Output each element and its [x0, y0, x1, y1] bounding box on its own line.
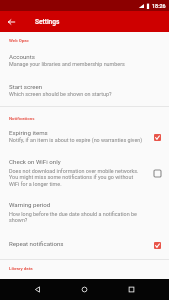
staticText: Which screen should be shown on startup?	[9, 91, 161, 97]
staticText: Notify, if an item is about to expire (n…	[9, 137, 161, 143]
button[interactable]: Start screen	[0, 79, 169, 101]
staticText: 18:26	[152, 3, 166, 9]
button[interactable]: Toggle setting	[152, 240, 162, 250]
button[interactable]: Back	[27, 279, 48, 300]
button[interactable]: Recent apps	[121, 279, 142, 300]
button[interactable]: Navigate up	[1, 11, 22, 32]
button[interactable]: Warning period	[0, 197, 169, 225]
staticText: Expiring items	[9, 129, 161, 136]
button[interactable]: Accounts	[0, 49, 169, 71]
button[interactable]: Expiring items	[0, 125, 169, 147]
staticText: Check on WiFi only	[9, 158, 161, 165]
button[interactable]: Repeat notifications	[0, 234, 169, 252]
staticText: Library data	[9, 266, 33, 271]
button[interactable]: Toggle setting	[152, 168, 162, 178]
staticText: Accounts	[9, 53, 161, 60]
staticText: How long before the due date should a no…	[9, 211, 161, 223]
staticText: Does not download information over mobil…	[9, 168, 161, 187]
staticText: Settings	[35, 18, 60, 26]
staticText: Notifications	[9, 116, 35, 121]
staticText: Repeat notifications	[9, 240, 161, 247]
staticText: Manage your libraries and membership num…	[9, 61, 161, 67]
button[interactable]: Check on WiFi only	[0, 154, 169, 189]
staticText: Start screen	[9, 83, 161, 90]
button[interactable]: Home	[74, 279, 95, 300]
button[interactable]: Toggle setting	[152, 132, 162, 142]
staticText: Warning period	[9, 201, 161, 208]
staticText: Web Opac	[9, 38, 29, 43]
